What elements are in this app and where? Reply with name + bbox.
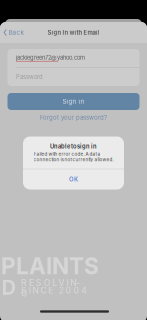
staticText: Back	[9, 29, 25, 36]
staticText: SINCE 2004	[21, 285, 87, 296]
staticText: OMPLAINTS	[0, 252, 99, 280]
staticText: Password	[16, 73, 43, 80]
button[interactable]: jackiegreen72@yahoo.com	[7, 49, 139, 67]
staticText: RESOLVING	[21, 278, 84, 288]
button[interactable]: Password	[7, 68, 139, 86]
staticText: Sign in	[62, 98, 84, 105]
button[interactable]: Back	[0, 22, 25, 43]
button[interactable]: Forgot your password?	[28, 112, 118, 123]
staticText: Failed with error code. A data connectio…	[33, 151, 113, 162]
staticText: Sign In with Email	[47, 29, 99, 36]
staticText: D	[1, 275, 15, 300]
staticText: jackiegreen72@yahoo.com	[16, 54, 85, 61]
staticText: Forgot your password?	[40, 114, 107, 121]
button[interactable]: OK	[23, 169, 124, 189]
staticText: OK	[69, 176, 78, 183]
staticText: Unable to sign in	[50, 143, 97, 150]
button[interactable]: Sign in	[7, 93, 139, 110]
